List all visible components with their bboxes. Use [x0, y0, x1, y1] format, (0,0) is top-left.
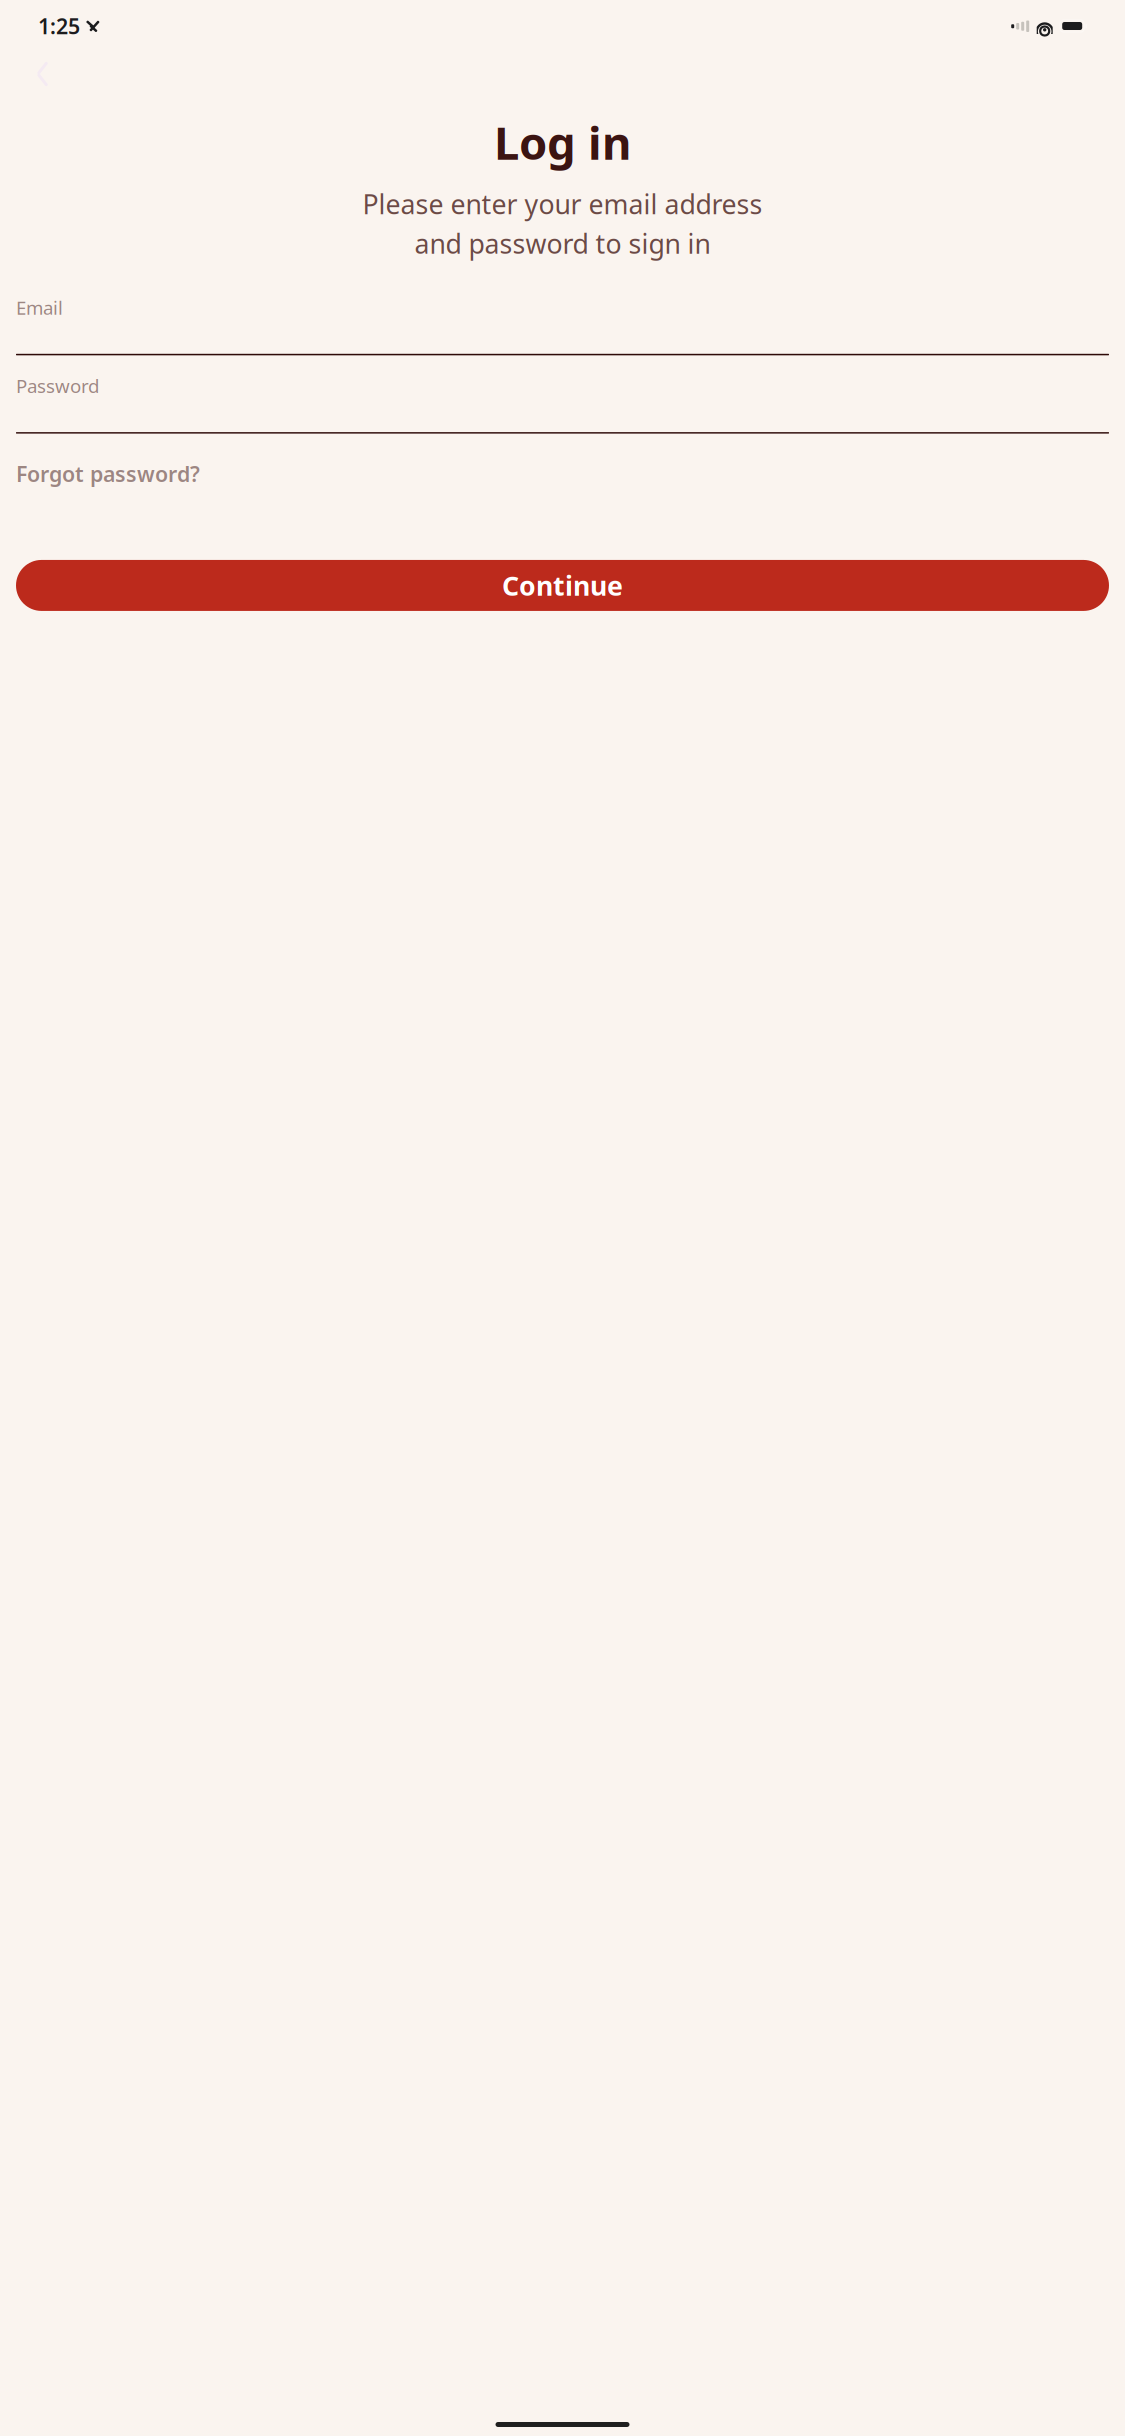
button[interactable]: Continue — [16, 560, 1109, 611]
staticText: 1:25 — [38, 12, 80, 40]
staticText: and password to sign in — [414, 226, 710, 261]
staticText: Please enter your email address — [362, 186, 762, 222]
staticText: Continue — [502, 568, 623, 603]
staticText: Password — [16, 373, 99, 398]
staticText: Forgot password? — [16, 460, 200, 488]
button[interactable]: Forgot password? — [16, 452, 200, 496]
staticText: Log in — [494, 112, 631, 172]
staticText: Email — [16, 295, 63, 320]
